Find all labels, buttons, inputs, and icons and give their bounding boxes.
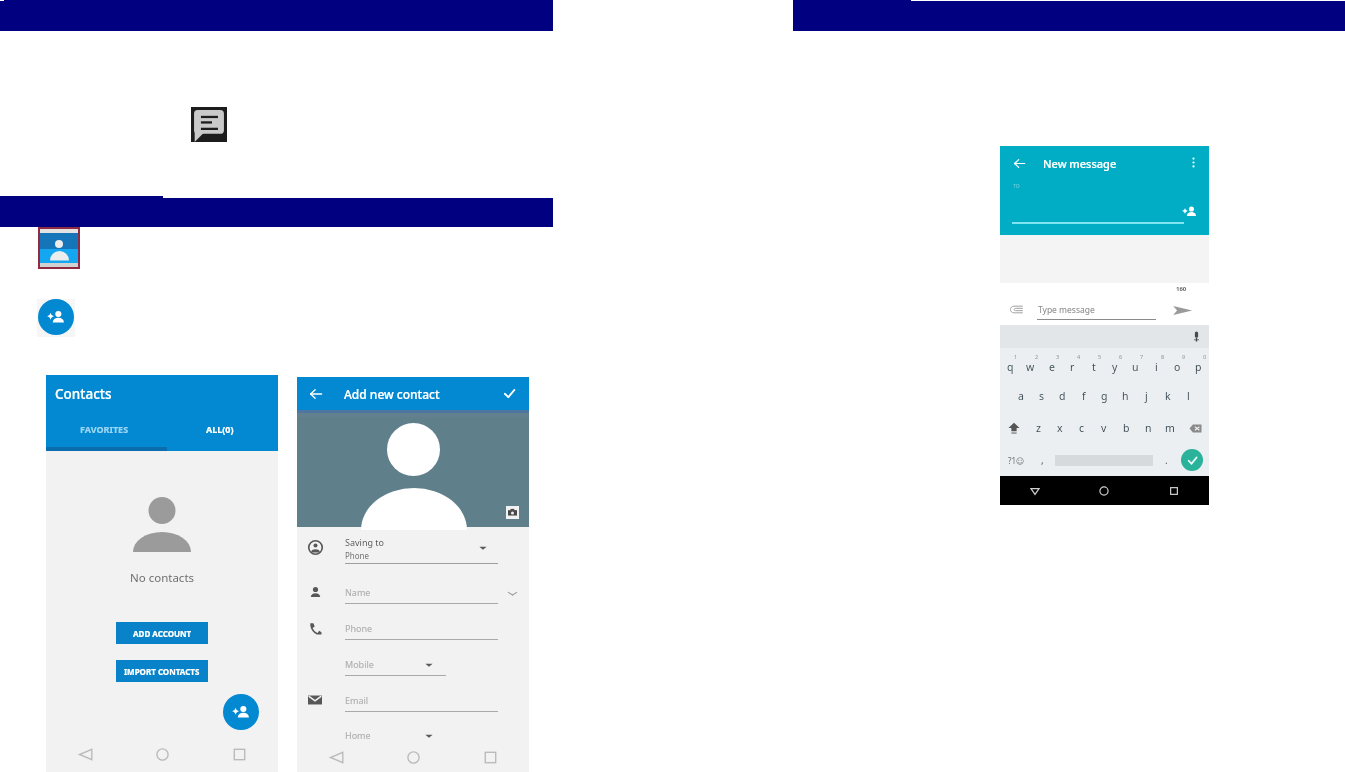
staticText: Phone bbox=[345, 622, 373, 634]
staticText: Saving to bbox=[345, 536, 385, 548]
button[interactable]: Add contact bbox=[223, 694, 259, 730]
button[interactable]: Recents bbox=[201, 737, 278, 772]
staticText: IMPORT CONTACTS bbox=[124, 666, 200, 677]
button[interactable]: n bbox=[1137, 412, 1159, 444]
button[interactable]: k bbox=[1157, 380, 1178, 412]
staticText: 1 bbox=[1014, 353, 1018, 360]
staticText: s bbox=[1039, 389, 1045, 403]
staticText: f bbox=[1082, 389, 1086, 403]
staticText: q bbox=[1007, 360, 1014, 374]
staticText: k bbox=[1165, 389, 1171, 403]
button[interactable]: Space bbox=[1051, 444, 1157, 476]
staticText: d bbox=[1059, 389, 1066, 403]
button[interactable]: 5 bbox=[1083, 348, 1104, 380]
staticText: Mobile bbox=[345, 658, 374, 670]
button[interactable]: Back bbox=[1000, 476, 1069, 505]
button[interactable]: ALL(0) bbox=[162, 414, 278, 444]
staticText: w bbox=[1026, 360, 1035, 374]
staticText: 4 bbox=[1077, 353, 1081, 360]
staticText: t bbox=[1092, 360, 1096, 374]
staticText: New message bbox=[1043, 156, 1117, 171]
button[interactable]: Home bbox=[375, 743, 452, 772]
button[interactable]: . bbox=[1157, 444, 1175, 476]
button[interactable]: FAVORITES bbox=[46, 414, 162, 444]
button[interactable]: Change photo bbox=[506, 506, 519, 519]
staticText: v bbox=[1101, 421, 1107, 435]
button[interactable]: Back bbox=[297, 743, 375, 772]
staticText: m bbox=[1165, 421, 1175, 435]
button[interactable]: b bbox=[1115, 412, 1137, 444]
button[interactable]: Home bbox=[1069, 476, 1139, 505]
staticText: ?1☺ bbox=[1008, 455, 1025, 466]
button[interactable]: d bbox=[1052, 380, 1073, 412]
staticText: FAVORITES bbox=[80, 423, 129, 435]
staticText: a bbox=[1018, 389, 1024, 403]
staticText: n bbox=[1145, 421, 1152, 435]
staticText: , bbox=[1041, 453, 1044, 467]
staticText: j bbox=[1145, 389, 1148, 403]
staticText: u bbox=[1132, 360, 1139, 374]
button[interactable]: 1 bbox=[1000, 348, 1020, 380]
staticText: Name bbox=[345, 586, 371, 598]
button[interactable]: z bbox=[1027, 412, 1049, 444]
button[interactable]: Recents bbox=[452, 743, 529, 772]
staticText: 0 bbox=[1203, 353, 1207, 360]
button[interactable]: 8 bbox=[1146, 348, 1167, 380]
staticText: h bbox=[1122, 389, 1129, 403]
button[interactable]: IMPORT CONTACTS bbox=[116, 660, 208, 682]
button[interactable]: h bbox=[1115, 380, 1136, 412]
button[interactable]: 9 bbox=[1167, 348, 1188, 380]
staticText: o bbox=[1174, 360, 1181, 374]
staticText: c bbox=[1079, 421, 1085, 435]
staticText: 9 bbox=[1182, 353, 1186, 360]
button[interactable]: Add contact bbox=[38, 299, 74, 335]
staticText: p bbox=[1195, 360, 1202, 374]
button[interactable]: Backspace bbox=[1181, 412, 1209, 444]
button[interactable]: a bbox=[1010, 380, 1031, 412]
staticText: i bbox=[1155, 360, 1158, 374]
staticText: 8 bbox=[1161, 353, 1165, 360]
staticText: ADD ACCOUNT bbox=[133, 628, 192, 639]
staticText: Type message bbox=[1038, 304, 1095, 316]
button[interactable]: c bbox=[1071, 412, 1093, 444]
staticText: e bbox=[1049, 360, 1055, 374]
staticText: No contacts bbox=[130, 570, 195, 586]
staticText: z bbox=[1036, 421, 1041, 435]
button[interactable]: f bbox=[1073, 380, 1094, 412]
button[interactable]: Home bbox=[124, 737, 201, 772]
staticText: y bbox=[1112, 360, 1118, 374]
button[interactable]: s bbox=[1031, 380, 1052, 412]
staticText: 6 bbox=[1119, 353, 1123, 360]
button[interactable]: v bbox=[1093, 412, 1115, 444]
staticText: l bbox=[1187, 389, 1190, 403]
staticText: 3 bbox=[1056, 353, 1060, 360]
staticText: x bbox=[1057, 421, 1063, 435]
staticText: Phone bbox=[345, 550, 370, 561]
button[interactable]: 4 bbox=[1062, 348, 1083, 380]
button[interactable]: l bbox=[1178, 380, 1199, 412]
staticText: Email bbox=[345, 694, 369, 706]
button[interactable]: Back bbox=[46, 737, 124, 772]
staticText: 7 bbox=[1140, 353, 1144, 360]
staticText: . bbox=[1165, 453, 1168, 467]
button[interactable]: g bbox=[1094, 380, 1115, 412]
button[interactable]: j bbox=[1136, 380, 1157, 412]
button[interactable]: 0 bbox=[1188, 348, 1209, 380]
button[interactable]: ADD ACCOUNT bbox=[116, 622, 208, 644]
staticText: g bbox=[1101, 389, 1108, 403]
staticText: 2 bbox=[1035, 353, 1039, 360]
staticText: 5 bbox=[1098, 353, 1102, 360]
button[interactable]: Send bbox=[1175, 444, 1209, 476]
button[interactable]: 3 bbox=[1041, 348, 1062, 380]
button[interactable]: Shift bbox=[1000, 412, 1027, 444]
button[interactable]: x bbox=[1049, 412, 1071, 444]
button[interactable]: ?1☺ bbox=[1000, 444, 1033, 476]
button[interactable]: , bbox=[1033, 444, 1051, 476]
button[interactable]: 2 bbox=[1020, 348, 1041, 380]
button[interactable]: Recents bbox=[1139, 476, 1209, 505]
button[interactable]: 7 bbox=[1125, 348, 1146, 380]
button[interactable]: 6 bbox=[1104, 348, 1125, 380]
button[interactable]: m bbox=[1159, 412, 1181, 444]
staticText: ALL(0) bbox=[206, 423, 234, 435]
staticText: Contacts bbox=[55, 385, 112, 403]
